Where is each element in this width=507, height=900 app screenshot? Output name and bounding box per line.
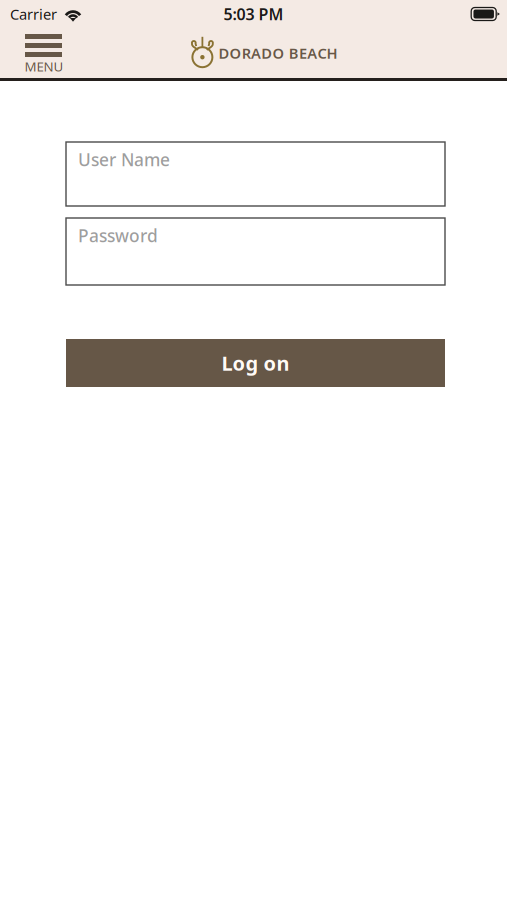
- staticText: Password: [78, 224, 158, 247]
- button[interactable]: User Name: [66, 142, 445, 206]
- staticText: User Name: [78, 148, 170, 171]
- staticText: DORADO BEACH: [218, 43, 338, 63]
- button[interactable]: Menu: [25, 34, 62, 74]
- button[interactable]: Password: [66, 218, 445, 285]
- staticText: Carrier: [10, 4, 57, 24]
- staticText: MENU: [24, 57, 63, 75]
- staticText: Log on: [221, 350, 289, 376]
- staticText: 5:03 PM: [223, 3, 283, 25]
- button[interactable]: Log on: [66, 339, 445, 387]
